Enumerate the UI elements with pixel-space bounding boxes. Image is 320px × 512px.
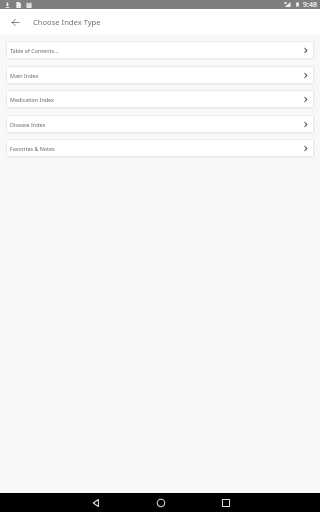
staticText: Disease Index — [10, 121, 46, 128]
button[interactable]: Back — [63, 493, 128, 512]
staticText: Medication Index — [10, 96, 54, 103]
staticText: Main Index — [10, 72, 39, 79]
staticText: 9:48 — [303, 0, 317, 9]
button[interactable]: Back — [5, 12, 25, 32]
button[interactable]: Table of Contents... — [6, 41, 314, 59]
button[interactable]: Disease Index — [6, 115, 314, 133]
button[interactable]: Medication Index — [6, 90, 314, 108]
button[interactable]: Recent apps — [193, 493, 258, 512]
staticText: Choose Index Type — [33, 17, 101, 27]
button[interactable]: Home — [128, 493, 193, 512]
staticText: Favorites & Notes — [10, 145, 55, 152]
button[interactable]: Favorites & Notes — [6, 139, 314, 157]
staticText: Table of Contents... — [10, 47, 59, 54]
button[interactable]: Main Index — [6, 66, 314, 84]
